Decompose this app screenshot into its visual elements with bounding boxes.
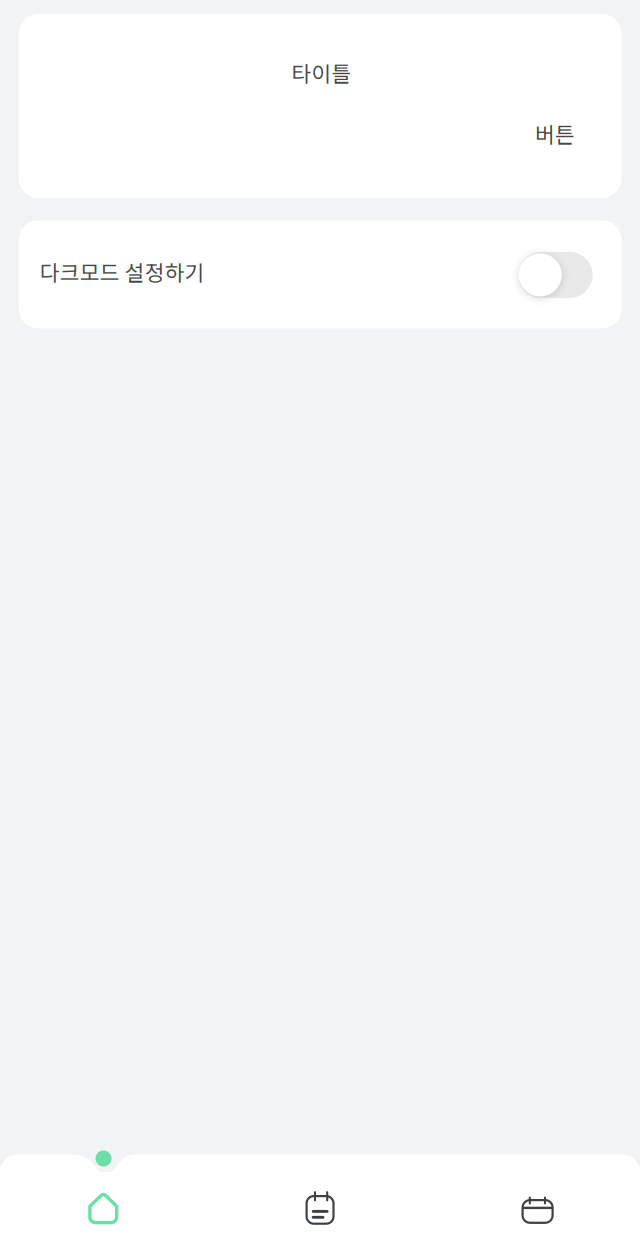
- button[interactable]: 다크모드 설정하기: [19, 220, 622, 328]
- staticText: 타이틀: [291, 57, 351, 88]
- staticText: 다크모드 설정하기: [40, 256, 205, 287]
- button[interactable]: Notes: [304, 1191, 335, 1224]
- button[interactable]: Calendar: [521, 1193, 554, 1226]
- button[interactable]: 버튼: [447, 107, 587, 159]
- staticText: 버튼: [535, 118, 575, 149]
- button[interactable]: Home: [88, 1191, 119, 1224]
